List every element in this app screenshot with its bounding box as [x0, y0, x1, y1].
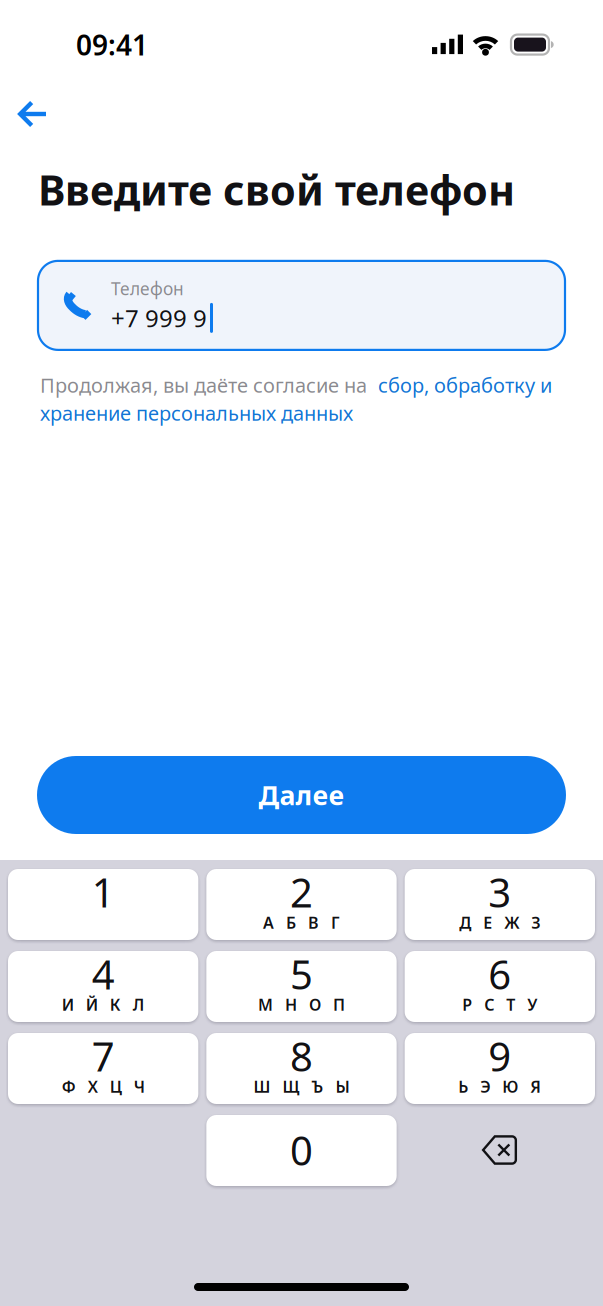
- staticText: 3: [488, 865, 511, 918]
- staticText: М Н О П: [258, 994, 345, 1015]
- button[interactable]: 3: [405, 869, 595, 940]
- button[interactable]: 4: [8, 951, 198, 1022]
- button[interactable]: 7: [8, 1033, 198, 1104]
- staticText: Далее: [258, 777, 344, 813]
- button[interactable]: 6: [405, 951, 595, 1022]
- staticText: Введите свой телефон: [38, 162, 515, 217]
- button[interactable]: 2: [206, 869, 397, 940]
- staticText: 9: [488, 1029, 511, 1082]
- staticText: 09:41: [76, 26, 148, 63]
- staticText: Р С Т У: [462, 994, 537, 1015]
- staticText: хранение персональных данных: [40, 400, 353, 426]
- staticText: 7: [92, 1029, 115, 1082]
- staticText: А Б В Г: [263, 912, 340, 933]
- staticText: 1: [92, 865, 115, 918]
- button[interactable]: 9: [405, 1033, 595, 1104]
- staticText: И Й К Л: [62, 994, 145, 1015]
- staticText: Ф Х Ц Ч: [62, 1076, 145, 1097]
- staticText: сбор, обработку и: [378, 372, 552, 398]
- button[interactable]: 1: [8, 869, 198, 940]
- staticText: 6: [488, 947, 511, 1000]
- staticText: Д Е Ж З: [459, 912, 540, 933]
- staticText: 5: [290, 947, 313, 1000]
- staticText: 8: [290, 1029, 313, 1082]
- staticText: Ш Щ Ъ Ы: [253, 1076, 349, 1097]
- staticText: Ь Э Ю Я: [458, 1076, 541, 1097]
- staticText: 2: [290, 865, 313, 918]
- staticText: Продолжая, вы даёте согласие на: [40, 372, 367, 398]
- staticText: +7 999 9: [111, 302, 207, 334]
- button[interactable]: Delete: [405, 1115, 595, 1186]
- button[interactable]: 5: [206, 951, 397, 1022]
- staticText: 4: [92, 947, 115, 1000]
- staticText: 0: [290, 1123, 313, 1176]
- button[interactable]: 8: [206, 1033, 397, 1104]
- button[interactable]: Далее: [37, 756, 566, 834]
- button[interactable]: Back: [0, 87, 63, 141]
- staticText: Телефон: [111, 277, 184, 300]
- button[interactable]: 0: [206, 1115, 397, 1186]
